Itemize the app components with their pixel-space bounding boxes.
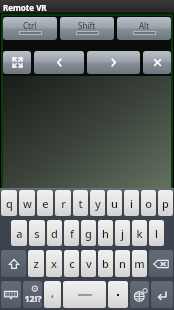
button[interactable]: q xyxy=(1,190,17,216)
button[interactable] xyxy=(63,281,106,308)
button[interactable]: Language xyxy=(130,281,149,308)
button[interactable]: k xyxy=(132,220,147,246)
button[interactable]: Ctrl xyxy=(3,17,57,40)
staticText: k xyxy=(136,226,143,241)
button[interactable]: Enter xyxy=(151,281,173,308)
button[interactable]: Shift xyxy=(60,17,114,40)
button[interactable]: e xyxy=(37,190,53,216)
button[interactable]: o xyxy=(141,190,156,216)
button[interactable]: z xyxy=(28,250,44,277)
button[interactable]: Symbols xyxy=(23,281,42,308)
staticText: g xyxy=(85,226,92,241)
staticText: i xyxy=(130,196,133,211)
button[interactable]: l xyxy=(149,220,164,246)
button[interactable]: w xyxy=(19,190,35,216)
button[interactable]: v xyxy=(81,250,96,277)
button[interactable]: Hide keyboard xyxy=(1,281,21,308)
staticText: u xyxy=(111,196,118,211)
staticText: z xyxy=(33,256,39,271)
staticText: p xyxy=(162,196,169,211)
button[interactable]: h xyxy=(98,220,113,246)
staticText: t xyxy=(78,196,83,211)
staticText: h xyxy=(102,226,109,241)
button[interactable]: Fullscreen xyxy=(3,51,31,74)
button[interactable]: Next xyxy=(87,51,140,74)
staticText: v xyxy=(86,256,92,271)
button[interactable]: Backspace xyxy=(149,250,173,277)
staticText: m xyxy=(134,256,145,271)
staticText: Ctrl xyxy=(23,20,37,31)
button[interactable]: , xyxy=(44,281,61,308)
staticText: w xyxy=(23,196,32,211)
staticText: f xyxy=(70,226,74,241)
staticText: q xyxy=(6,196,13,211)
button[interactable]: m xyxy=(132,250,147,277)
button[interactable]: s xyxy=(29,220,45,246)
button[interactable]: d xyxy=(47,220,62,246)
button[interactable]: Alt xyxy=(117,17,171,40)
staticText: 12!? xyxy=(24,292,42,304)
staticText: Remote VR xyxy=(3,2,47,13)
button[interactable]: Shift xyxy=(1,250,26,277)
button[interactable]: i xyxy=(124,190,139,216)
staticText: n xyxy=(119,256,126,271)
staticText: y xyxy=(95,196,101,211)
staticText: Shift xyxy=(78,20,96,31)
button[interactable]: j xyxy=(115,220,130,246)
staticText: e xyxy=(42,196,49,211)
staticText: s xyxy=(34,226,40,241)
button[interactable]: a xyxy=(11,220,27,246)
button[interactable]: Remote screen xyxy=(3,76,171,188)
button[interactable] xyxy=(108,281,128,308)
button[interactable]: Close xyxy=(143,51,171,74)
staticText: l xyxy=(155,226,158,241)
staticText: , xyxy=(51,285,55,300)
button[interactable]: c xyxy=(64,250,79,277)
button[interactable]: x xyxy=(46,250,62,277)
staticText: r xyxy=(61,196,66,211)
staticText: a xyxy=(16,226,23,241)
button[interactable]: Previous xyxy=(34,51,84,74)
button[interactable]: u xyxy=(107,190,122,216)
staticText: o xyxy=(145,196,152,211)
staticText: Alt xyxy=(139,20,150,31)
button[interactable]: y xyxy=(90,190,105,216)
button[interactable]: t xyxy=(73,190,88,216)
staticText: c xyxy=(69,256,75,271)
button[interactable]: g xyxy=(81,220,96,246)
button[interactable]: f xyxy=(64,220,79,246)
staticText: b xyxy=(102,256,109,271)
staticText: d xyxy=(51,226,58,241)
button[interactable]: r xyxy=(55,190,71,216)
button[interactable]: n xyxy=(115,250,130,277)
staticText: j xyxy=(121,226,124,241)
button[interactable]: p xyxy=(158,190,173,216)
button[interactable]: b xyxy=(98,250,113,277)
staticText: x xyxy=(51,256,57,271)
